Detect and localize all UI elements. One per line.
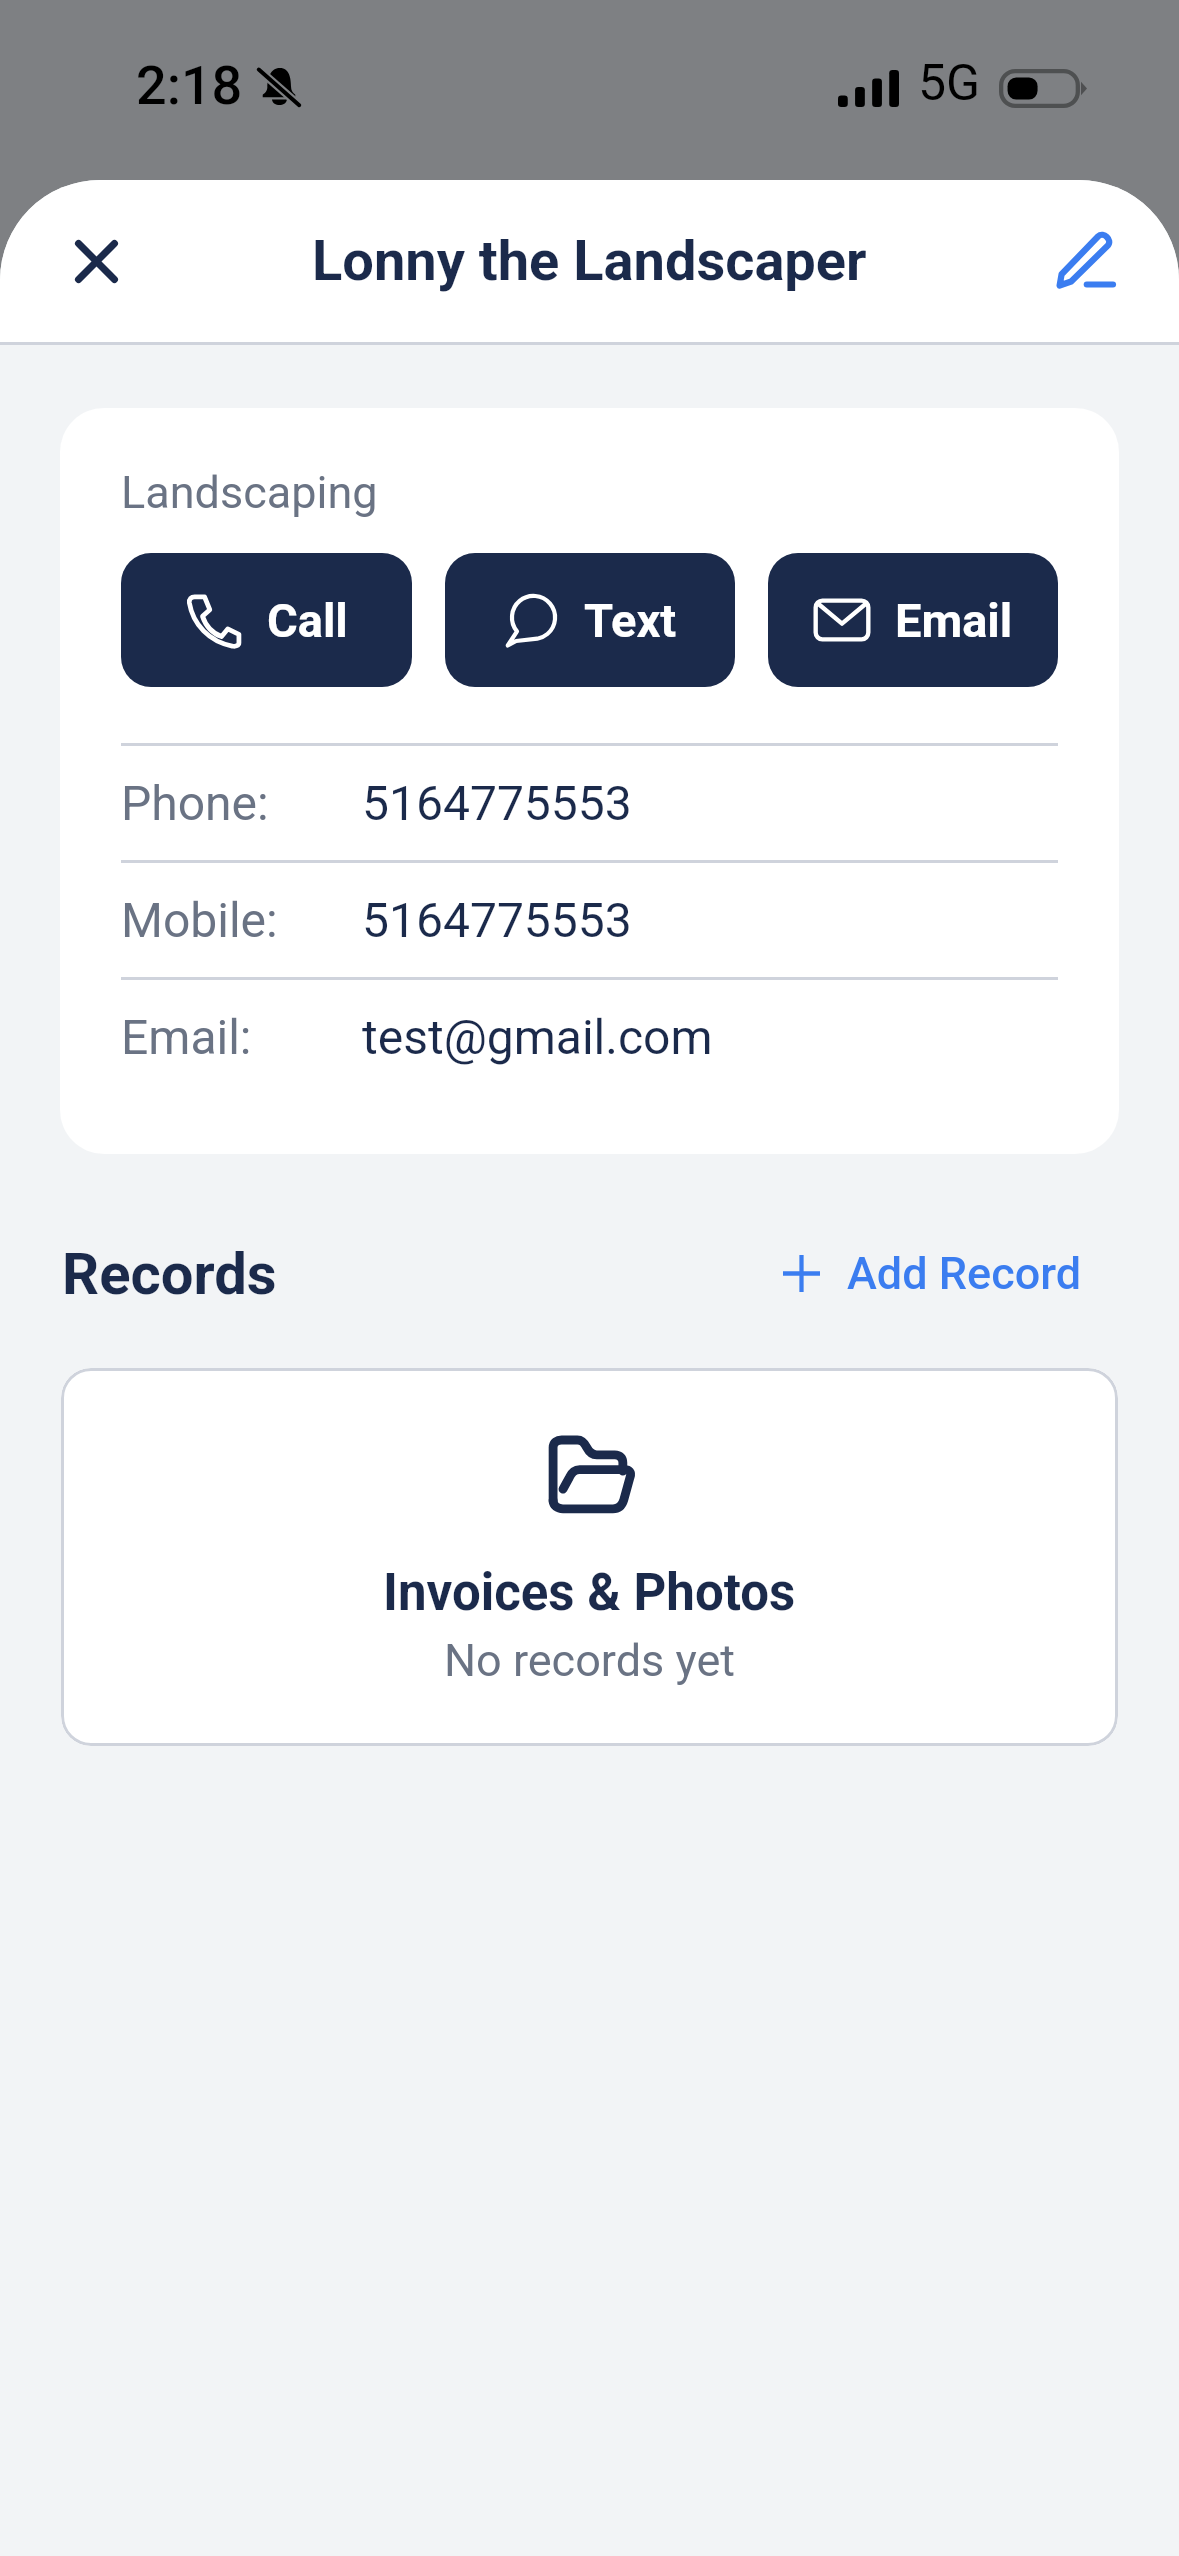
- button[interactable]: Edit: [1033, 206, 1143, 316]
- staticText: 5164775553: [362, 775, 632, 831]
- button[interactable]: Close: [41, 206, 151, 316]
- staticText: No records yet: [444, 1634, 736, 1687]
- button[interactable]: Text: [445, 553, 735, 687]
- button[interactable]: Call: [121, 553, 412, 687]
- button[interactable]: Email: [768, 553, 1058, 687]
- staticText: Text: [584, 593, 677, 648]
- staticText: Lonny the Landscaper: [312, 228, 867, 294]
- staticText: Invoices & Photos: [383, 1563, 796, 1623]
- staticText: Mobile:: [121, 892, 362, 948]
- staticText: Email:: [121, 1009, 362, 1065]
- staticText: Phone:: [121, 775, 362, 831]
- button[interactable]: Add Record: [769, 1233, 1096, 1314]
- staticText: Records: [62, 1240, 277, 1308]
- staticText: 2:18: [136, 54, 243, 117]
- staticText: 5164775553: [362, 892, 632, 948]
- staticText: test@gmail.com: [362, 1009, 713, 1065]
- staticText: 5G: [918, 54, 981, 113]
- staticText: Call: [267, 593, 348, 648]
- staticText: Email: [895, 593, 1013, 648]
- staticText: Add Record: [847, 1247, 1082, 1300]
- button[interactable]: Invoices & Photos: [61, 1368, 1118, 1746]
- staticText: Landscaping: [121, 466, 378, 519]
